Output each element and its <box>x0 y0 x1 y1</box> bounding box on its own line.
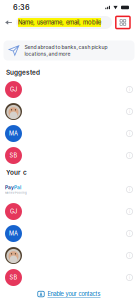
staticText: MA <box>9 130 18 137</box>
staticText: Name, username, email, mobile <box>18 19 101 26</box>
button[interactable]: MA <box>0 122 138 144</box>
button[interactable]: PayPal Money Pooling <box>0 178 138 200</box>
button[interactable]: Send abroad to banks, cash pickup <box>3 40 134 61</box>
staticText: i <box>129 252 130 259</box>
staticText: locations, and more <box>24 51 70 57</box>
button[interactable]: Contact photo <box>0 100 138 122</box>
staticText: i <box>129 130 130 137</box>
button[interactable]: SB <box>0 266 138 288</box>
staticText: GJ <box>10 208 17 215</box>
staticText: SB <box>9 274 17 281</box>
staticText: Suggested <box>6 69 40 76</box>
staticText: 6:36 <box>13 3 30 12</box>
staticText: MA <box>9 230 18 237</box>
button[interactable]: Back <box>1 16 16 29</box>
staticText: i <box>129 108 130 115</box>
staticText: i <box>129 230 130 237</box>
button[interactable]: GJ <box>0 78 138 100</box>
staticText: i <box>129 152 130 159</box>
staticText: Your c <box>6 169 27 176</box>
button[interactable]: Enable your contacts <box>37 288 100 299</box>
button[interactable]: Scan QR code <box>116 16 130 29</box>
staticText: Enable your contacts <box>47 291 100 297</box>
staticText: i <box>129 208 130 215</box>
button[interactable]: SB <box>0 144 138 166</box>
staticText: i <box>129 86 130 93</box>
staticText: i <box>129 274 130 281</box>
staticText: GJ <box>10 86 17 93</box>
button[interactable]: Contact photo <box>0 244 138 266</box>
staticText: Money Pooling <box>5 191 27 194</box>
staticText: Send abroad to banks, cash pickup <box>24 44 107 50</box>
staticText: SB <box>9 152 17 159</box>
button[interactable]: GJ <box>0 200 138 222</box>
staticText: Pal <box>14 185 21 190</box>
staticText: Pay <box>5 185 14 190</box>
button[interactable]: MA <box>0 222 138 244</box>
staticText: i <box>129 186 130 193</box>
